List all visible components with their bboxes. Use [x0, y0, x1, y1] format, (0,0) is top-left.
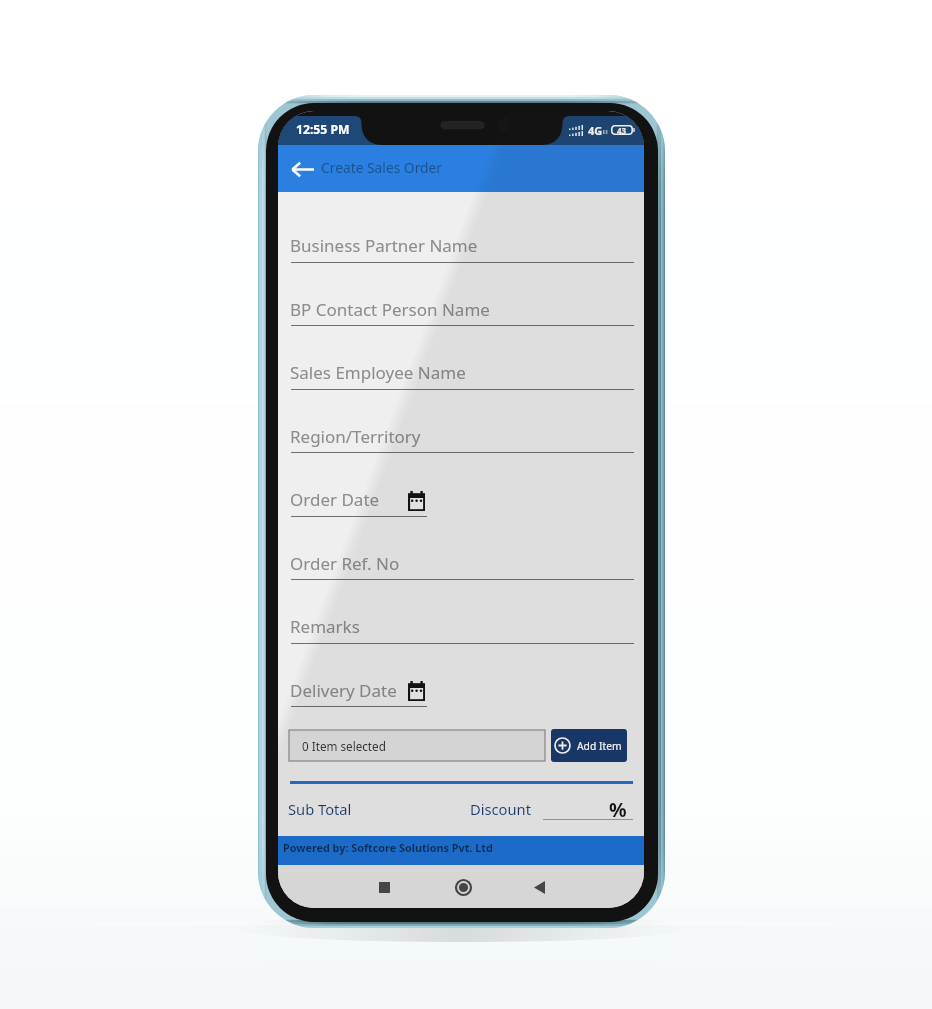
- staticText: Powered by: Softcore Solutions Pvt. Ltd: [283, 840, 493, 855]
- staticText: Order Date: [290, 488, 380, 511]
- staticText: Order Ref. No: [290, 552, 400, 575]
- button[interactable]: BP Contact Person Name: [290, 296, 631, 322]
- button[interactable]: 0 Item selected: [289, 730, 545, 761]
- button[interactable]: Recents: [365, 868, 403, 906]
- staticText: BP Contact Person Name: [290, 298, 490, 321]
- button[interactable]: Sales Employee Name: [290, 359, 631, 385]
- staticText: Add Item: [577, 739, 622, 753]
- staticText: 12:55 PM: [296, 121, 350, 138]
- button[interactable]: Pick date: [401, 485, 432, 516]
- staticText: Sales Employee Name: [290, 361, 466, 384]
- button[interactable]: Add Item: [551, 729, 627, 762]
- staticText: Create Sales Order: [321, 158, 443, 177]
- staticText: Region/Territory: [290, 425, 421, 448]
- button[interactable]: Business Partner Name: [290, 232, 631, 258]
- button[interactable]: Order Ref. No: [290, 550, 631, 576]
- staticText: Delivery Date: [290, 679, 397, 702]
- staticText: %: [609, 796, 627, 823]
- staticText: 43: [617, 125, 627, 135]
- button[interactable]: Pick date: [401, 675, 432, 706]
- staticText: 4G: [588, 123, 603, 138]
- button[interactable]: Order Date: [290, 486, 631, 512]
- staticText: Sub Total: [288, 799, 352, 819]
- button[interactable]: Home: [444, 868, 482, 906]
- button[interactable]: Remarks: [290, 613, 631, 639]
- staticText: Discount: [470, 799, 531, 819]
- button[interactable]: Back: [284, 150, 322, 188]
- staticText: Remarks: [290, 615, 360, 638]
- button[interactable]: Back: [520, 868, 558, 906]
- button[interactable]: Delivery Date: [290, 677, 631, 703]
- button[interactable]: Region/Territory: [290, 423, 631, 449]
- staticText: Business Partner Name: [290, 234, 478, 257]
- staticText: 0 Item selected: [302, 738, 386, 754]
